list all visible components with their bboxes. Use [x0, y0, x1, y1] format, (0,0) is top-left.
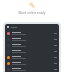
button[interactable]: [5, 36, 59, 42]
button[interactable]: [5, 60, 59, 66]
button[interactable]: [5, 30, 59, 36]
button[interactable]: [5, 42, 59, 48]
button[interactable]: [5, 48, 59, 54]
button[interactable]: [5, 54, 59, 60]
staticText: Meet online easily: [0, 11, 64, 15]
button[interactable]: [5, 66, 59, 72]
